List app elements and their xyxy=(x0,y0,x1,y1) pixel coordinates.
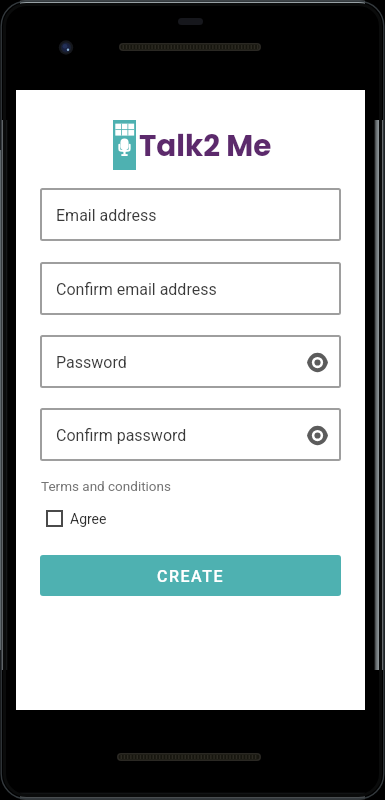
staticText: Terms and conditions xyxy=(41,478,171,494)
button[interactable]: Password xyxy=(40,335,341,388)
button[interactable]: Confirm password xyxy=(40,408,341,461)
button[interactable]: Show password xyxy=(304,422,330,448)
staticText: Confirm email address xyxy=(56,280,217,299)
button[interactable]: Confirm email address xyxy=(40,262,341,315)
button[interactable]: Email address xyxy=(40,188,341,241)
button[interactable]: Agree xyxy=(46,510,107,527)
staticText: Confirm password xyxy=(56,426,187,445)
button[interactable]: CREATE xyxy=(40,555,341,596)
staticText: Email address xyxy=(56,206,157,225)
button[interactable]: Show password xyxy=(304,349,330,375)
staticText: CREATE xyxy=(157,567,224,586)
staticText: Agree xyxy=(70,511,107,527)
staticText: Password xyxy=(56,353,127,372)
staticText: Talk2 Me xyxy=(139,125,272,166)
